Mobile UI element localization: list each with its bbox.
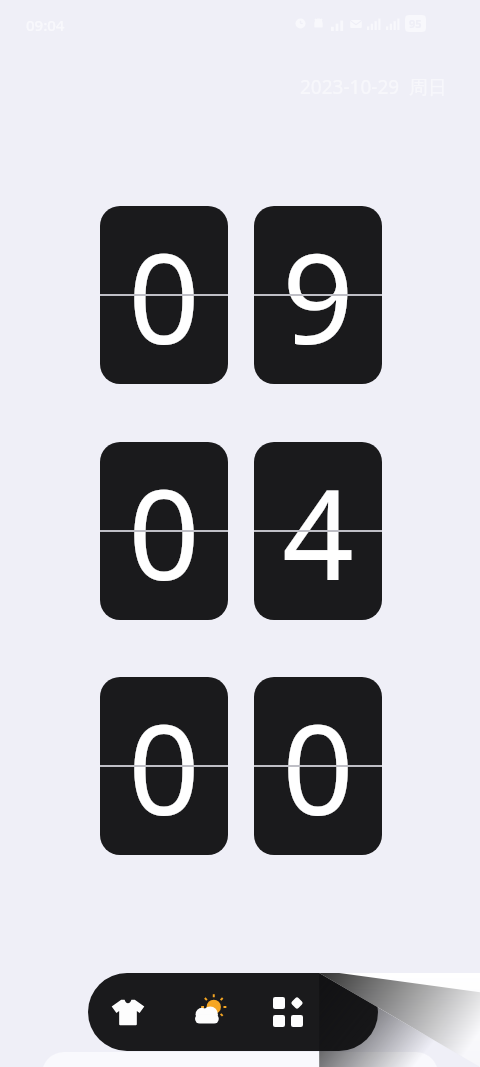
button[interactable]: Apps <box>248 973 328 1051</box>
button[interactable]: 4 <box>254 442 382 620</box>
staticText: 9 <box>282 210 354 380</box>
button[interactable]: 0 <box>100 677 228 855</box>
staticText: 09:04 <box>26 15 65 35</box>
staticText: 0 <box>282 681 354 851</box>
staticText: 0 <box>128 210 200 380</box>
staticText: 0 <box>128 681 200 851</box>
button[interactable]: Weather <box>168 973 248 1051</box>
staticText: 0 <box>128 446 200 616</box>
button[interactable]: 9 <box>254 206 382 384</box>
button[interactable]: 0 <box>254 677 382 855</box>
staticText: 4 <box>282 446 354 616</box>
button[interactable]: 0 <box>100 442 228 620</box>
button[interactable]: Wardrobe <box>88 973 168 1051</box>
button[interactable]: 0 <box>100 206 228 384</box>
staticText: 95 <box>409 16 422 31</box>
